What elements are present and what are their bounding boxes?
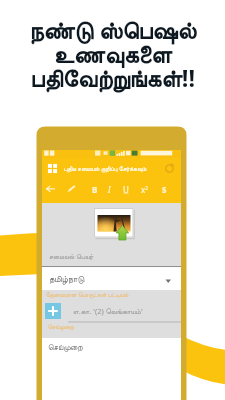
staticText: சமையல் பெயர் bbox=[49, 252, 94, 262]
staticText: தமிழ்நாடு bbox=[49, 275, 85, 284]
staticText: எ.கா. '(2) வெங்காயம்' bbox=[73, 306, 143, 316]
staticText: உணவுகளை bbox=[0, 44, 225, 68]
staticText: பதிவேற்றுங்கள்!! bbox=[0, 62, 225, 94]
staticText: x² bbox=[141, 184, 149, 195]
staticText: I bbox=[108, 184, 111, 195]
button[interactable]: Apps menu bbox=[46, 162, 59, 175]
staticText: S bbox=[162, 184, 167, 195]
staticText: U bbox=[123, 184, 129, 195]
button[interactable]: Add photo bbox=[94, 208, 136, 245]
staticText: செய்முறை bbox=[48, 324, 74, 330]
button[interactable]: Refresh bbox=[163, 162, 176, 175]
staticText: செய்முறை bbox=[48, 344, 83, 352]
staticText: B bbox=[92, 184, 98, 195]
button[interactable]: Add ingredient bbox=[45, 303, 61, 319]
staticText: புதிய சமையல் குறிப்பு சேர்க்கவும் bbox=[64, 165, 147, 173]
staticText: தேவையான பொருட்கள் பட்டியல் bbox=[46, 291, 129, 299]
staticText: நண்டு ஸ்பெஷல் bbox=[0, 14, 225, 46]
